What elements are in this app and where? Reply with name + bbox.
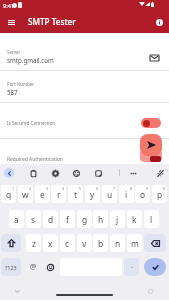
button[interactable]: del xyxy=(144,234,166,252)
staticText: e xyxy=(40,189,45,200)
button[interactable]: dot xyxy=(124,258,139,276)
button[interactable]: b xyxy=(93,234,108,252)
button[interactable]: j xyxy=(110,210,125,228)
staticText: z xyxy=(32,238,36,249)
button[interactable]: q xyxy=(1,185,16,203)
staticText: o xyxy=(140,189,146,200)
staticText: t xyxy=(74,189,78,200)
staticText: w xyxy=(22,189,29,200)
staticText: 1 xyxy=(12,186,15,191)
button[interactable]: Recents xyxy=(145,286,155,296)
button[interactable]: w xyxy=(18,185,33,203)
button[interactable]: Voice input off xyxy=(153,166,167,180)
staticText: m xyxy=(131,238,139,249)
button[interactable]: c xyxy=(60,234,75,252)
staticText: a xyxy=(14,214,19,225)
staticText: b xyxy=(98,238,104,249)
staticText: ?123 xyxy=(5,264,17,271)
button[interactable]: v xyxy=(77,234,92,252)
button[interactable]: shift xyxy=(1,234,21,252)
button[interactable]: Stickers xyxy=(91,166,105,180)
staticText: Server xyxy=(7,49,21,55)
staticText: f xyxy=(66,214,69,225)
button[interactable]: g xyxy=(77,210,92,228)
button[interactable]: Port Number xyxy=(0,70,169,102)
button[interactable]: l xyxy=(144,210,159,228)
staticText: . xyxy=(131,261,133,271)
button[interactable]: Settings xyxy=(48,166,62,180)
staticText: 0 xyxy=(163,186,166,191)
button[interactable]: h xyxy=(93,210,108,228)
staticText: Is Secured Connection xyxy=(7,120,56,126)
staticText: 587 xyxy=(7,88,18,96)
staticText: p xyxy=(157,189,163,200)
button[interactable]: Info xyxy=(149,11,169,33)
button[interactable]: a xyxy=(9,210,24,228)
button[interactable]: e xyxy=(35,185,50,203)
button[interactable]: Back xyxy=(4,168,14,178)
staticText: 9 xyxy=(146,186,149,191)
staticText: 8 xyxy=(130,186,133,191)
staticText: q xyxy=(6,189,12,200)
staticText: c xyxy=(65,238,70,249)
button[interactable]: Is Secured Connection xyxy=(0,102,169,138)
staticText: 5 xyxy=(79,186,82,191)
button[interactable]: Send xyxy=(140,134,162,156)
staticText: @ xyxy=(30,262,37,272)
button[interactable]: s xyxy=(26,210,41,228)
staticText: 7 xyxy=(113,186,116,191)
button[interactable]: i xyxy=(119,185,134,203)
button[interactable]: Email xyxy=(144,48,164,68)
button[interactable]: ?123 xyxy=(1,258,21,276)
staticText: 6 xyxy=(96,186,99,191)
button[interactable]: m xyxy=(127,234,142,252)
staticText: v xyxy=(82,238,87,249)
button[interactable]: f xyxy=(60,210,75,228)
staticText: x xyxy=(48,238,53,249)
staticText: 2 xyxy=(29,186,32,191)
staticText: 4 xyxy=(62,186,65,191)
button[interactable]: n xyxy=(110,234,125,252)
staticText: l xyxy=(150,214,153,225)
staticText: 3 xyxy=(46,186,49,191)
staticText: smtp.gmail.com xyxy=(7,56,54,64)
button[interactable]: d xyxy=(43,210,58,228)
staticText: 9:41 xyxy=(3,2,15,10)
staticText: k xyxy=(132,214,137,225)
button[interactable]: x xyxy=(43,234,58,252)
staticText: SMTP Tester xyxy=(28,16,76,27)
button[interactable]: z xyxy=(26,234,41,252)
staticText: r xyxy=(57,189,61,200)
staticText: Port Number xyxy=(7,81,34,87)
staticText: s xyxy=(31,214,36,225)
button[interactable]: t xyxy=(68,185,83,203)
button[interactable]: r xyxy=(51,185,66,203)
staticText: i xyxy=(125,189,128,200)
button[interactable]: Themes xyxy=(69,166,83,180)
staticText: g xyxy=(82,214,88,225)
staticText: d xyxy=(48,214,54,225)
button[interactable]: Hide keyboard xyxy=(12,286,22,296)
staticText: j xyxy=(116,214,119,225)
button[interactable]: o xyxy=(135,185,150,203)
button[interactable]: p xyxy=(152,185,167,203)
button[interactable]: u xyxy=(102,185,117,203)
staticText: Required Authentication xyxy=(7,156,63,163)
button[interactable]: emoji xyxy=(43,258,58,276)
button[interactable]: Server xyxy=(0,38,169,70)
staticText: n xyxy=(115,238,121,249)
staticText: u xyxy=(107,189,113,200)
button[interactable]: k xyxy=(127,210,142,228)
button[interactable]: More options xyxy=(126,166,140,180)
button[interactable]: enter xyxy=(144,258,166,276)
staticText: y xyxy=(90,189,95,200)
button[interactable]: Clipboard xyxy=(26,166,40,180)
button[interactable]: @ xyxy=(26,258,41,276)
button[interactable]: y xyxy=(85,185,100,203)
staticText: h xyxy=(98,214,104,225)
button[interactable]: Open navigation menu xyxy=(1,11,21,33)
